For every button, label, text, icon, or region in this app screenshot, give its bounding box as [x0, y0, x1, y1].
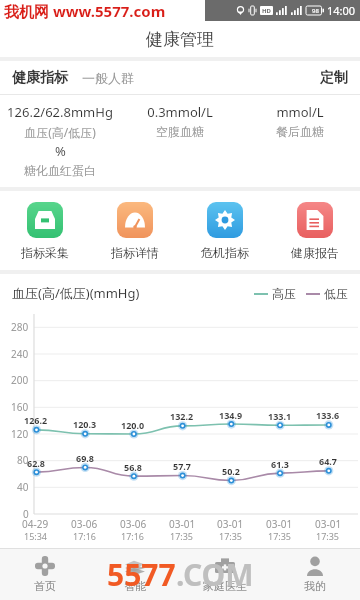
- staticText: 健康管理: [146, 29, 214, 50]
- staticText: 64.7: [319, 455, 337, 467]
- staticText: 健康指标: [12, 69, 68, 87]
- staticText: 空腹血糖: [156, 124, 204, 139]
- staticText: 17:35: [316, 530, 340, 542]
- staticText: 98: [312, 7, 319, 15]
- staticText: 50.2: [222, 465, 240, 477]
- staticText: 危机指标: [201, 245, 249, 260]
- staticText: 15:34: [24, 530, 48, 542]
- button[interactable]: 指标采集: [0, 202, 90, 260]
- staticText: 定制: [320, 69, 348, 87]
- staticText: 低压: [324, 286, 348, 301]
- staticText: 17:35: [219, 530, 243, 542]
- button[interactable]: 家庭医生: [180, 548, 270, 600]
- staticText: 家庭医生: [203, 579, 247, 593]
- staticText: 指标采集: [21, 245, 69, 260]
- staticText: 首页: [34, 579, 56, 593]
- staticText: 200: [11, 373, 29, 387]
- staticText: 我机网 www.5577.com: [4, 1, 166, 21]
- staticText: 03-01: [217, 517, 244, 531]
- staticText: 280: [11, 320, 29, 334]
- staticText: 03-01: [266, 517, 293, 531]
- staticText: 40: [17, 480, 29, 494]
- button[interactable]: 我的: [270, 548, 360, 600]
- staticText: 03-06: [71, 517, 98, 531]
- button[interactable]: 126.2/62.8mmHg: [0, 103, 120, 140]
- staticText: 133.6: [316, 409, 340, 421]
- button[interactable]: %: [0, 142, 120, 178]
- button[interactable]: mmol/L: [240, 103, 360, 139]
- staticText: 126.2/62.8mmHg: [7, 103, 113, 121]
- staticText: 132.2: [170, 410, 194, 422]
- staticText: 03-01: [169, 517, 196, 531]
- staticText: 56.8: [124, 461, 142, 473]
- staticText: 61.3: [271, 458, 289, 470]
- staticText: 智能: [124, 579, 146, 593]
- button[interactable]: 0.3mmol/L: [120, 103, 240, 139]
- staticText: %: [55, 142, 66, 160]
- button[interactable]: 首页: [0, 548, 90, 600]
- staticText: 17:35: [170, 530, 194, 542]
- button[interactable]: 健康报告: [270, 202, 360, 260]
- staticText: HD: [262, 7, 271, 15]
- staticText: 17:35: [268, 530, 292, 542]
- staticText: 一般人群: [82, 70, 134, 86]
- staticText: 160: [11, 400, 29, 414]
- staticText: 57.7: [173, 460, 191, 472]
- staticText: 17:16: [121, 530, 145, 542]
- staticText: 80: [17, 453, 29, 467]
- staticText: 餐后血糖: [276, 124, 324, 139]
- staticText: 指标详情: [111, 245, 159, 260]
- staticText: 120.3: [73, 418, 97, 430]
- staticText: .COM: [176, 554, 254, 595]
- staticText: 03-01: [315, 517, 342, 531]
- staticText: 134.9: [219, 409, 243, 421]
- staticText: 我的: [304, 579, 326, 593]
- staticText: 糖化血红蛋白: [24, 163, 96, 178]
- staticText: 69.8: [76, 452, 94, 464]
- staticText: 0: [23, 507, 29, 521]
- staticText: 17:16: [73, 530, 97, 542]
- staticText: 血压(高/低压)(mmHg): [12, 284, 140, 302]
- staticText: 62.8: [27, 457, 45, 469]
- staticText: 240: [11, 347, 29, 361]
- button[interactable]: 智能: [90, 548, 180, 600]
- staticText: 5577: [107, 554, 176, 595]
- staticText: 血压(高/低压): [24, 124, 96, 140]
- staticText: 126.2: [24, 414, 48, 426]
- staticText: 健康报告: [291, 245, 339, 260]
- staticText: 高压: [272, 286, 296, 301]
- button[interactable]: 危机指标: [180, 202, 270, 260]
- staticText: 03-06: [120, 517, 147, 531]
- staticText: 04-29: [22, 517, 49, 531]
- staticText: mmol/L: [276, 103, 324, 121]
- button[interactable]: 指标详情: [90, 202, 180, 260]
- staticText: 120.0: [121, 419, 145, 431]
- staticText: 133.1: [268, 410, 292, 422]
- staticText: 14:00: [327, 3, 356, 18]
- staticText: 120: [11, 427, 29, 441]
- button[interactable]: 定制: [320, 69, 348, 87]
- staticText: 0.3mmol/L: [147, 103, 213, 121]
